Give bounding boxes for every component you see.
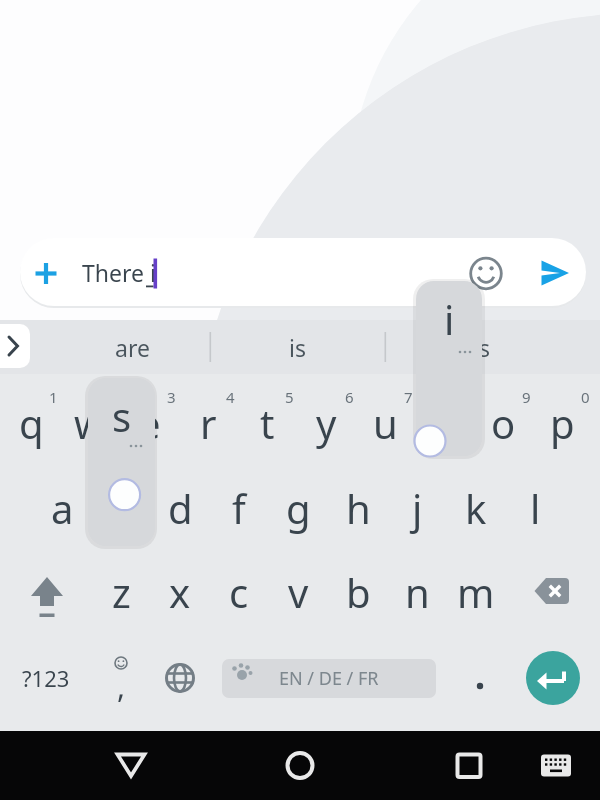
staticText: are	[115, 332, 150, 363]
staticText: m	[457, 565, 495, 619]
button[interactable]: s	[88, 378, 155, 546]
staticText: 9	[522, 387, 531, 407]
button[interactable]: v	[270, 552, 326, 632]
staticText: a	[51, 481, 74, 535]
staticText: w	[74, 396, 106, 450]
staticText: d	[168, 481, 193, 535]
staticText: 1	[49, 387, 58, 407]
button[interactable]	[466, 253, 506, 293]
staticText: EN / DE / FR	[279, 666, 379, 691]
button[interactable]: i	[416, 385, 472, 461]
staticText: o	[491, 396, 516, 450]
button[interactable]: r	[180, 385, 236, 461]
button[interactable]: EN / DE / FR	[222, 659, 436, 698]
button[interactable]	[26, 253, 66, 293]
button[interactable]: y	[298, 385, 354, 461]
staticText: z	[112, 565, 131, 619]
button[interactable]: q	[3, 385, 59, 461]
button[interactable]	[536, 253, 580, 293]
button[interactable]	[270, 735, 330, 795]
button[interactable]: z	[93, 552, 149, 632]
button[interactable]: w	[62, 385, 118, 461]
button[interactable]	[0, 324, 30, 368]
button[interactable]: x	[152, 552, 208, 632]
button[interactable]: t	[239, 385, 295, 461]
staticText: h	[346, 481, 371, 535]
staticText: ,	[117, 666, 126, 707]
button[interactable]: i	[416, 281, 482, 456]
button[interactable]: s	[93, 468, 149, 548]
staticText: j	[412, 481, 423, 535]
staticText: 6	[345, 387, 354, 407]
button[interactable]: m	[448, 552, 504, 632]
button[interactable]: is	[242, 324, 352, 370]
staticText: b	[346, 565, 371, 619]
button[interactable]: o	[475, 385, 531, 461]
staticText: x	[169, 565, 191, 619]
staticText: is	[289, 332, 306, 363]
staticText: e	[138, 396, 161, 450]
button[interactable]: c	[211, 552, 267, 632]
staticText: g	[286, 481, 311, 535]
button[interactable]	[439, 735, 499, 795]
button[interactable]: a	[34, 468, 90, 548]
button[interactable]	[522, 558, 584, 628]
button[interactable]: h	[330, 468, 386, 548]
staticText: 5	[285, 387, 294, 407]
button[interactable]	[20, 238, 586, 306]
staticText: l	[530, 481, 541, 535]
staticText: i	[444, 292, 455, 346]
button[interactable]: f	[211, 468, 267, 548]
staticText: f	[232, 481, 246, 535]
staticText: 4	[226, 387, 235, 407]
staticText: 7	[404, 387, 413, 407]
button[interactable]	[17, 558, 79, 628]
button[interactable]: g	[270, 468, 326, 548]
staticText: p	[550, 396, 575, 450]
staticText: k	[465, 481, 487, 535]
staticText: q	[19, 396, 44, 450]
staticText: y	[316, 396, 337, 450]
button[interactable]: u	[357, 385, 413, 461]
staticText: s	[112, 389, 132, 443]
button[interactable]: l	[507, 468, 563, 548]
staticText: i	[439, 396, 450, 450]
staticText: u	[373, 396, 398, 450]
staticText: There i	[82, 257, 156, 288]
staticText: n	[405, 565, 430, 619]
button[interactable]: p	[534, 385, 590, 461]
staticText: t	[260, 396, 275, 450]
button[interactable]: b	[330, 552, 386, 632]
button[interactable]: j	[389, 468, 445, 548]
button[interactable]	[526, 651, 580, 705]
staticText: ?123	[22, 663, 70, 693]
button[interactable]: k	[448, 468, 504, 548]
staticText: s	[111, 481, 131, 535]
button[interactable]: e	[121, 385, 177, 461]
button[interactable]: ,	[93, 648, 149, 708]
staticText: c	[229, 565, 249, 619]
staticText: s	[479, 332, 491, 363]
button[interactable]: s	[470, 324, 500, 370]
staticText: 0	[581, 387, 590, 407]
button[interactable]: are	[77, 324, 187, 370]
button[interactable]: ?123	[6, 648, 86, 708]
button[interactable]: d	[152, 468, 208, 548]
button[interactable]	[455, 650, 505, 706]
button[interactable]	[152, 650, 208, 706]
staticText: v	[288, 565, 309, 619]
button[interactable]: n	[389, 552, 445, 632]
staticText: r	[200, 396, 217, 450]
button[interactable]	[101, 735, 161, 795]
staticText: 3	[167, 387, 176, 407]
button[interactable]	[526, 735, 586, 795]
